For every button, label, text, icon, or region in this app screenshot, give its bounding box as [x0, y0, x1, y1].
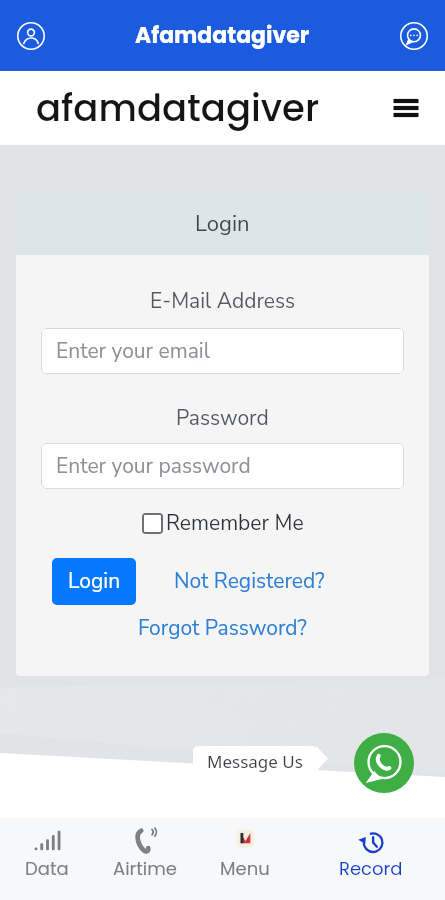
- button[interactable]: Enter your email: [41, 328, 404, 374]
- staticText: Airtime: [113, 856, 177, 881]
- staticText: Password: [176, 404, 269, 433]
- staticText: Enter your password: [56, 452, 251, 481]
- staticText: Message Us: [207, 750, 303, 773]
- staticText: Record: [339, 856, 403, 881]
- staticText: Login: [195, 209, 250, 239]
- staticText: Login: [68, 567, 121, 596]
- button[interactable]: Login: [52, 558, 136, 605]
- button[interactable]: Airtime: [97, 818, 193, 900]
- button[interactable]: Menu: [197, 818, 293, 900]
- staticText: afamdatagiver: [36, 82, 320, 134]
- button[interactable]: Enter your password: [41, 443, 404, 489]
- button[interactable]: Remember Me: [142, 509, 304, 538]
- staticText: Remember Me: [166, 509, 304, 538]
- staticText: Enter your email: [56, 337, 210, 366]
- staticText: E-Mail Address: [150, 287, 296, 316]
- button[interactable]: Account: [8, 13, 54, 59]
- button[interactable]: Message us on WhatsApp: [354, 733, 414, 793]
- button[interactable]: Forgot Password?: [132, 610, 313, 647]
- button[interactable]: Data: [0, 818, 95, 900]
- staticText: Forgot Password?: [138, 614, 307, 643]
- staticText: Afamdatagiver: [135, 20, 310, 51]
- button[interactable]: Messages: [391, 13, 437, 59]
- staticText: Menu: [220, 856, 270, 881]
- staticText: Data: [25, 856, 69, 881]
- button[interactable]: Open menu: [385, 87, 427, 129]
- button[interactable]: Record: [323, 818, 419, 900]
- staticText: Not Registered?: [174, 567, 325, 596]
- button[interactable]: Not Registered?: [170, 563, 329, 600]
- button[interactable]: Message Us: [193, 746, 317, 776]
